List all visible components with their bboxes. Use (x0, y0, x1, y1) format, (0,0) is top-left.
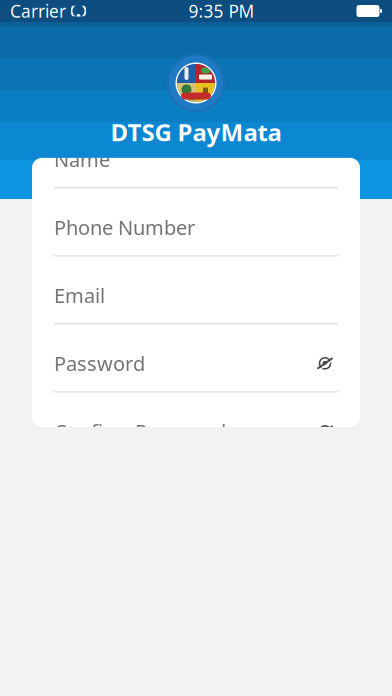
staticText: Name (54, 146, 110, 173)
staticText: Carrier (10, 0, 66, 22)
staticText: SIGN UP (147, 80, 245, 112)
staticText: 9:35 PM (188, 0, 254, 22)
button[interactable]: Show Password (312, 352, 338, 374)
staticText: Password (54, 350, 145, 377)
staticText: Email (54, 282, 105, 309)
staticText: DTSG PayMata (110, 116, 281, 148)
button[interactable]: Show Confirm Password (312, 420, 338, 442)
staticText: Confirm Password (54, 418, 226, 445)
staticText: Phone Number (54, 214, 195, 241)
